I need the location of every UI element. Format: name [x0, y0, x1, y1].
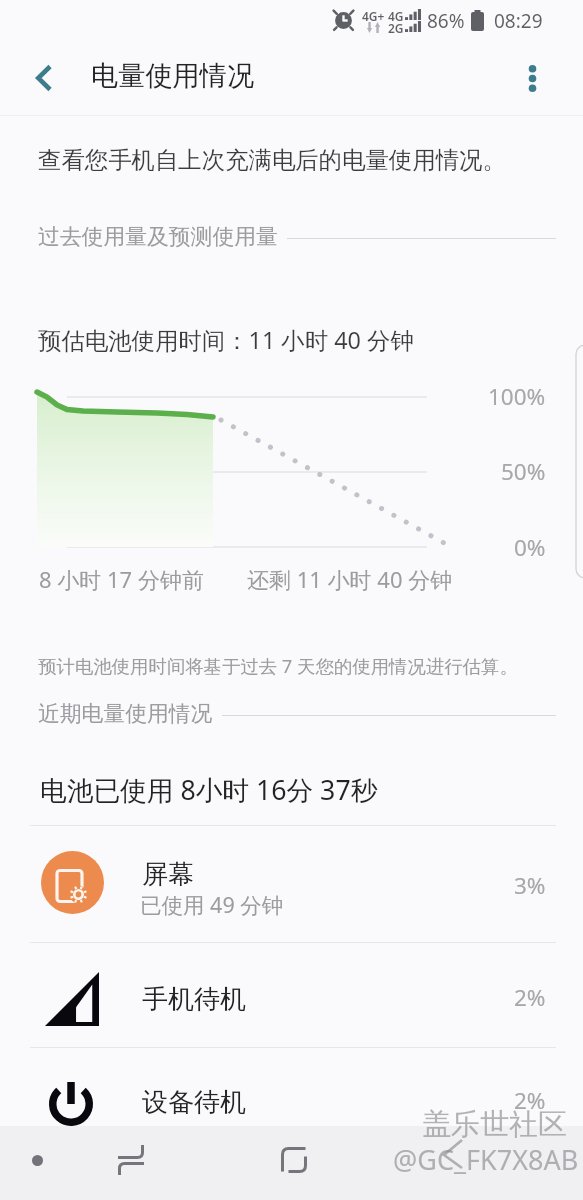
button[interactable]: 设备待机 — [0, 1048, 583, 1126]
button[interactable]: 手机待机 — [0, 943, 583, 1047]
staticText: 100% — [488, 381, 546, 412]
staticText: 还剩 11 小时 40 分钟 — [247, 564, 453, 594]
staticText: 近期电量使用情况 — [38, 700, 213, 727]
button[interactable]: Back — [22, 55, 68, 101]
staticText: 8 小时 17 分钟前 — [39, 564, 204, 594]
staticText: 2% — [514, 1085, 546, 1116]
staticText: 查看您手机自上次充满电后的电量使用情况。 — [38, 145, 506, 174]
staticText: 2G — [388, 20, 404, 36]
staticText: 预计电池使用时间将基于过去 7 天您的使用情况进行估算。 — [38, 653, 518, 678]
staticText: 4G — [388, 8, 404, 24]
staticText: 86% — [427, 8, 465, 34]
staticText: 盖乐世社区 — [422, 1106, 567, 1143]
staticText: 3% — [514, 870, 546, 901]
staticText: 设备待机 — [142, 1086, 246, 1119]
staticText: 已使用 49 分钟 — [140, 890, 284, 919]
staticText: 0% — [514, 532, 546, 563]
staticText: 屏幕 — [142, 858, 194, 891]
staticText: 电量使用情况 — [91, 59, 255, 93]
button[interactable]: 屏幕 — [0, 826, 583, 942]
button[interactable]: More options — [509, 55, 555, 101]
staticText: 50% — [501, 456, 546, 487]
staticText: @GC_FK7X8AB — [393, 1141, 579, 1178]
staticText: 手机待机 — [142, 983, 246, 1016]
staticText: 2% — [514, 982, 546, 1013]
button[interactable]: Home — [256, 1126, 331, 1194]
staticText: 08:29 — [494, 8, 543, 34]
staticText: 过去使用量及预测使用量 — [38, 223, 278, 250]
staticText: 预估电池使用时间：11 小时 40 分钟 — [38, 324, 414, 356]
button[interactable]: Back — [93, 1126, 168, 1193]
button[interactable]: Recent apps — [0, 1126, 75, 1194]
staticText: 电池已使用 8小时 16分 37秒 — [40, 771, 378, 807]
staticText: 4G+ — [362, 8, 385, 24]
